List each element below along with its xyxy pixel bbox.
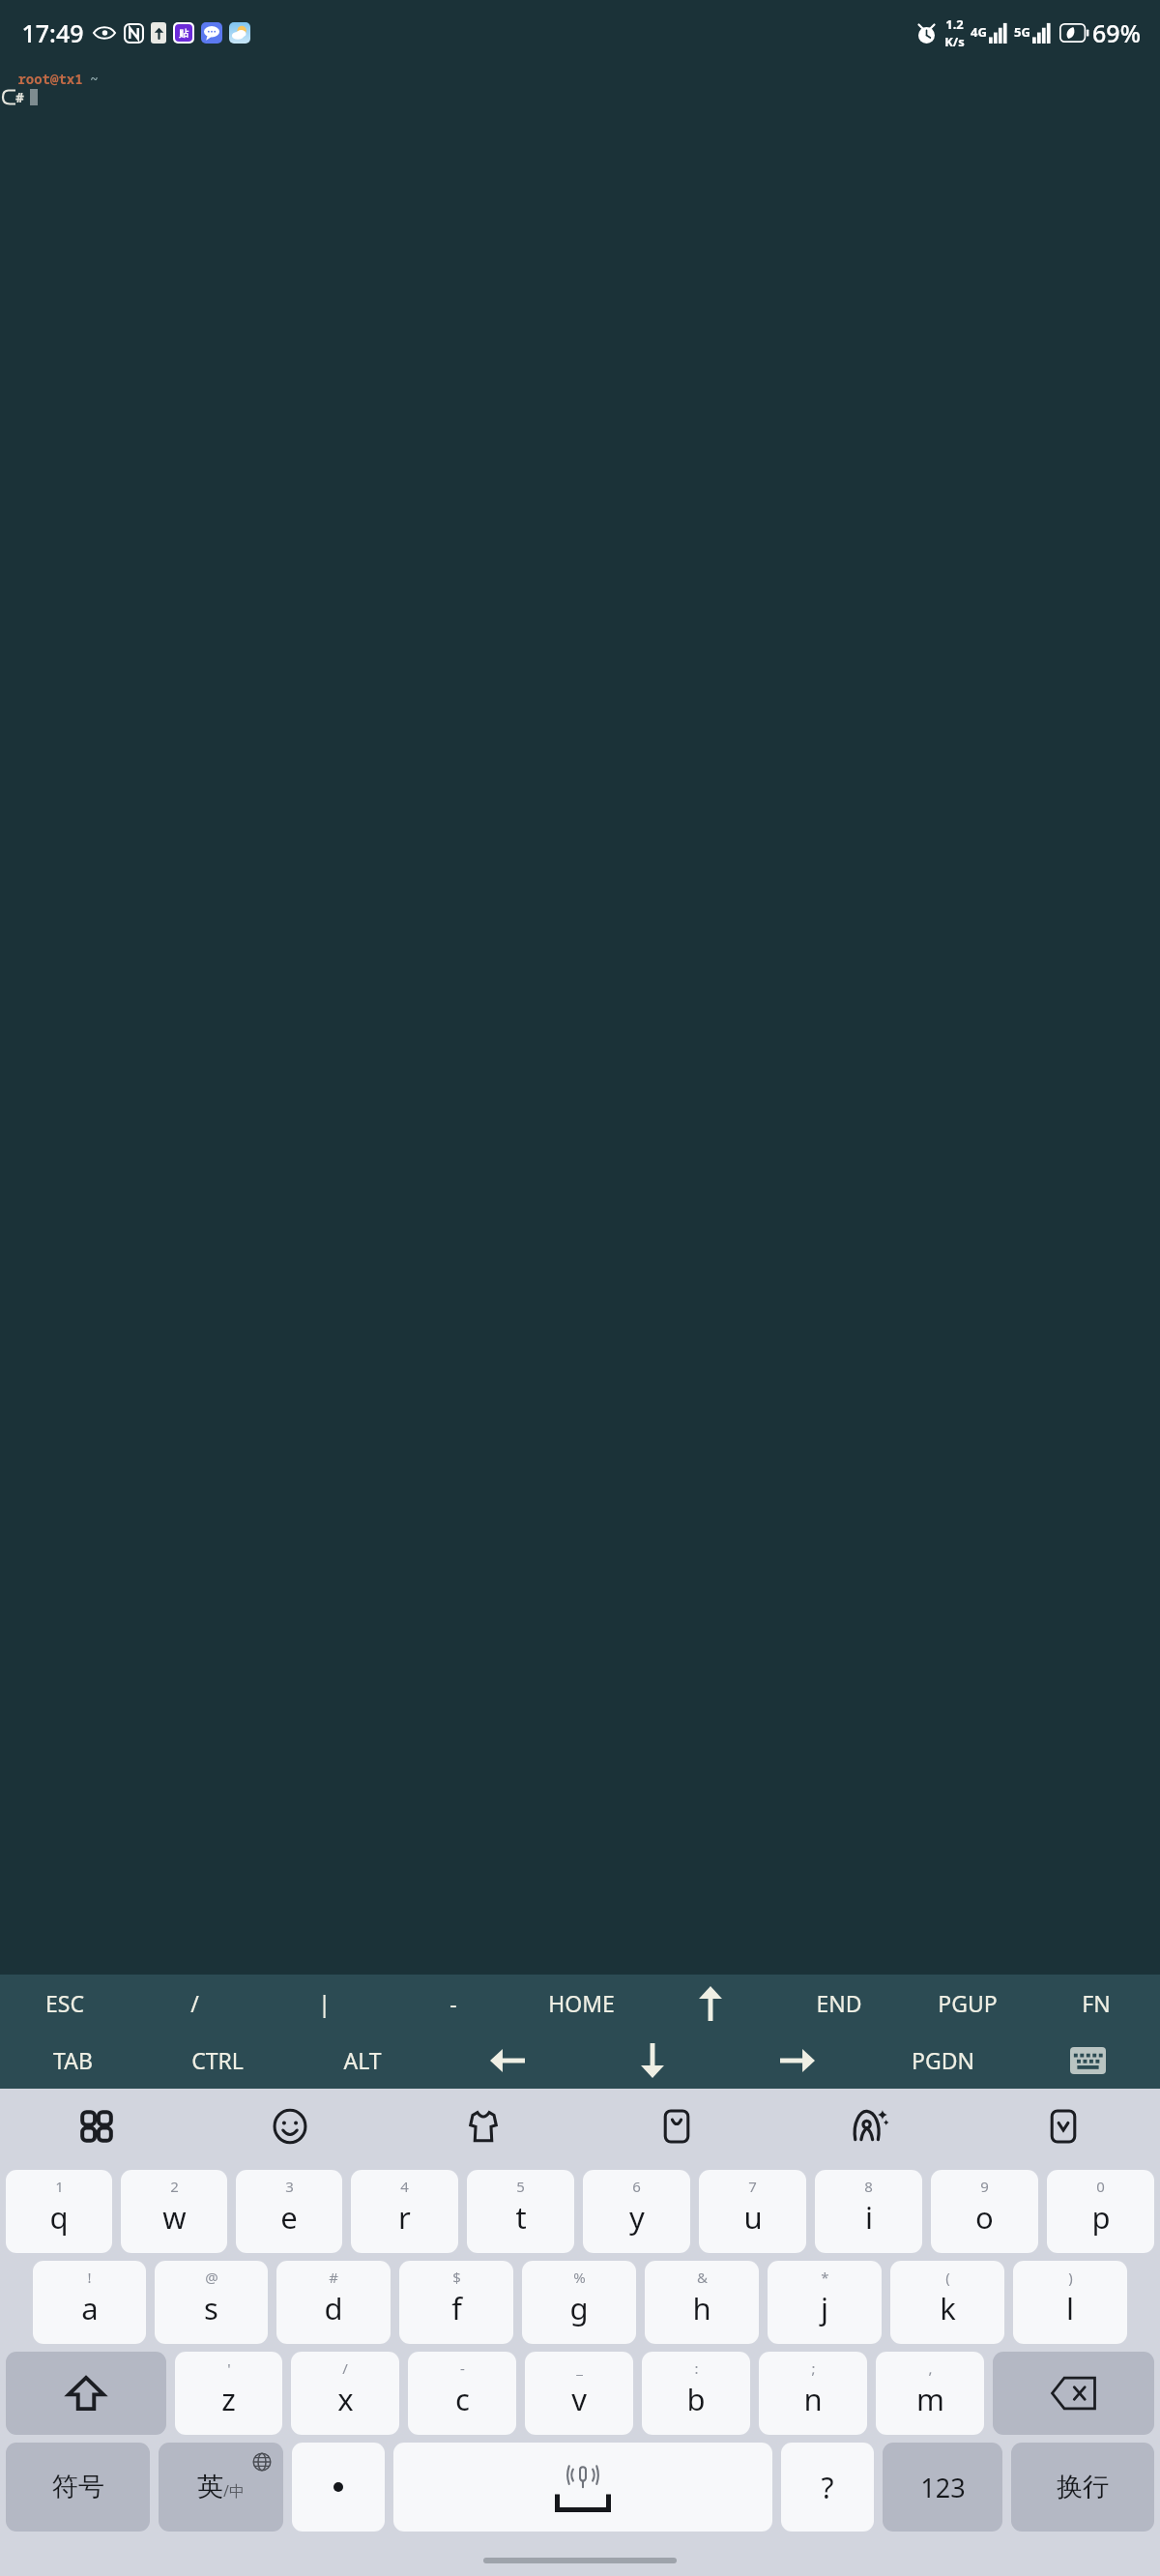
- button[interactable]: #: [276, 2261, 391, 2344]
- staticText: &: [697, 2268, 708, 2287]
- staticText: $: [452, 2268, 461, 2287]
- button[interactable]: 符号: [6, 2443, 150, 2532]
- button[interactable]: 3: [236, 2170, 342, 2253]
- button[interactable]: ALT: [290, 2032, 435, 2089]
- button[interactable]: Themes: [387, 2089, 580, 2164]
- staticText: h: [692, 2288, 711, 2328]
- staticText: FN: [1082, 1988, 1111, 2018]
- staticText: _: [576, 2358, 583, 2378]
- button[interactable]: [292, 2443, 385, 2532]
- button[interactable]: CTRL: [145, 2032, 290, 2089]
- staticText: ESC: [45, 1988, 84, 2018]
- button[interactable]: @: [155, 2261, 268, 2344]
- button[interactable]: (: [890, 2261, 1004, 2344]
- button[interactable]: $: [399, 2261, 513, 2344]
- staticText: y: [629, 2197, 645, 2238]
- button[interactable]: HOME: [517, 1975, 646, 2032]
- staticText: q: [49, 2197, 69, 2238]
- button[interactable]: 换行: [1011, 2443, 1154, 2532]
- staticText: 5G: [1014, 23, 1030, 41]
- staticText: 英: [197, 2471, 223, 2503]
- button[interactable]: ESC: [0, 1975, 130, 2032]
- button[interactable]: Apps: [0, 2089, 193, 2164]
- button[interactable]: Shift: [6, 2352, 166, 2435]
- button[interactable]: /: [130, 1975, 259, 2032]
- staticText: root@tx1: [17, 70, 83, 88]
- staticText: (: [945, 2268, 950, 2287]
- staticText: 0: [1096, 2177, 1105, 2196]
- button[interactable]: Hide keyboard: [1015, 2032, 1160, 2089]
- button[interactable]: Store: [580, 2089, 773, 2164]
- button[interactable]: Space: [393, 2443, 772, 2532]
- staticText: /: [190, 1988, 199, 2018]
- staticText: 2: [170, 2177, 179, 2196]
- button[interactable]: END: [774, 1975, 903, 2032]
- button[interactable]: TAB: [0, 2032, 145, 2089]
- button[interactable]: 英: [159, 2443, 283, 2532]
- staticText: HOME: [548, 1988, 615, 2018]
- staticText: k: [940, 2288, 956, 2328]
- button[interactable]: Arrow left: [435, 2032, 580, 2089]
- button[interactable]: |: [259, 1975, 389, 2032]
- staticText: x: [337, 2379, 354, 2419]
- staticText: 1.2: [945, 15, 964, 33]
- staticText: K/s: [944, 33, 965, 50]
- staticText: 6: [632, 2177, 641, 2196]
- staticText: p: [1091, 2197, 1111, 2238]
- button[interactable]: 2: [121, 2170, 227, 2253]
- staticText: CTRL: [191, 2045, 244, 2075]
- button[interactable]: -: [408, 2352, 516, 2435]
- staticText: #: [329, 2268, 338, 2287]
- staticText: m: [916, 2379, 944, 2419]
- button[interactable]: ?: [781, 2443, 874, 2532]
- button[interactable]: !: [33, 2261, 146, 2344]
- staticText: s: [204, 2288, 218, 2328]
- staticText: ;: [811, 2358, 816, 2378]
- button[interactable]: :: [642, 2352, 750, 2435]
- staticText: TAB: [53, 2045, 93, 2075]
- staticText: #: [15, 88, 24, 106]
- button[interactable]: PGUP: [903, 1975, 1031, 2032]
- button[interactable]: /: [291, 2352, 399, 2435]
- staticText: -: [460, 2358, 465, 2378]
- staticText: c: [455, 2379, 470, 2419]
- staticText: 4: [400, 2177, 409, 2196]
- button[interactable]: Arrow down: [580, 2032, 725, 2089]
- button[interactable]: AI assistant: [773, 2089, 967, 2164]
- button[interactable]: Collapse keyboard: [967, 2089, 1160, 2164]
- button[interactable]: _: [525, 2352, 633, 2435]
- button[interactable]: 8: [815, 2170, 922, 2253]
- staticText: ?: [821, 2468, 834, 2507]
- button[interactable]: FN: [1031, 1975, 1160, 2032]
- button[interactable]: Arrow right: [725, 2032, 870, 2089]
- button[interactable]: &: [645, 2261, 759, 2344]
- button[interactable]: 9: [931, 2170, 1038, 2253]
- staticText: *: [821, 2268, 829, 2287]
- button[interactable]: Emoji: [193, 2089, 387, 2164]
- staticText: ,: [928, 2358, 933, 2378]
- button[interactable]: ): [1013, 2261, 1127, 2344]
- button[interactable]: *: [768, 2261, 882, 2344]
- staticText: /: [342, 2358, 348, 2378]
- button[interactable]: PGDN: [870, 2032, 1015, 2089]
- button[interactable]: 123: [883, 2443, 1002, 2532]
- staticText: :: [694, 2358, 699, 2378]
- button[interactable]: 0: [1047, 2170, 1154, 2253]
- button[interactable]: ,: [876, 2352, 984, 2435]
- button[interactable]: ': [175, 2352, 282, 2435]
- staticText: |: [318, 1988, 331, 2018]
- staticText: 换行: [1057, 2471, 1109, 2503]
- staticText: 69%: [1092, 16, 1141, 49]
- button[interactable]: 1: [6, 2170, 112, 2253]
- button[interactable]: -: [389, 1975, 517, 2032]
- button[interactable]: ;: [759, 2352, 867, 2435]
- button[interactable]: Backspace: [993, 2352, 1154, 2435]
- staticText: 8: [864, 2177, 873, 2196]
- button[interactable]: 7: [699, 2170, 806, 2253]
- button[interactable]: 4: [351, 2170, 458, 2253]
- button[interactable]: 6: [583, 2170, 690, 2253]
- button[interactable]: 5: [467, 2170, 574, 2253]
- button[interactable]: %: [522, 2261, 636, 2344]
- staticText: e: [280, 2197, 298, 2238]
- button[interactable]: Arrow up: [646, 1975, 774, 2032]
